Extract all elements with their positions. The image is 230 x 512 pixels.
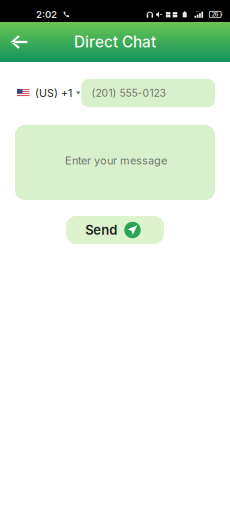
staticText: Enter your message xyxy=(65,154,167,167)
staticText: 26 xyxy=(212,11,219,18)
staticText: (201) 555-0123 xyxy=(91,87,165,99)
staticText: (US) +1 xyxy=(35,86,72,99)
staticText: 2:02 xyxy=(36,9,57,20)
staticText: Send xyxy=(85,222,117,238)
button[interactable]: (US) +1 xyxy=(17,79,80,107)
button[interactable]: Back xyxy=(0,22,38,62)
staticText: Direct Chat xyxy=(74,33,156,51)
button[interactable]: Send xyxy=(66,216,164,244)
